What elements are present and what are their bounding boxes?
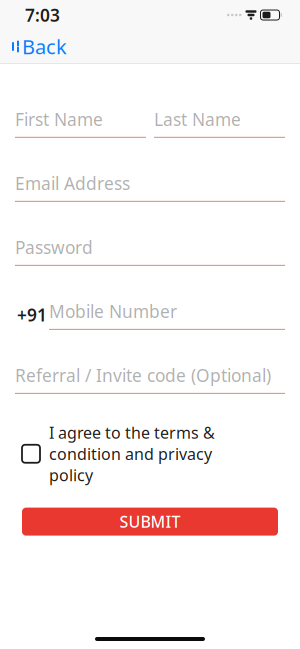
button[interactable]: Back (0, 27, 77, 66)
button[interactable]: I agree to the terms & condition and pri… (15, 422, 285, 486)
staticText: Email Address (15, 172, 130, 195)
staticText: I agree to the terms & condition and pri… (49, 422, 215, 486)
staticText: Back (22, 33, 67, 60)
staticText: Password (15, 236, 93, 259)
staticText: Mobile Number (49, 300, 177, 323)
staticText: Last Name (154, 108, 241, 131)
staticText: 7:03 (25, 3, 60, 26)
staticText: +91 (17, 303, 47, 326)
button[interactable]: SUBMIT (15, 508, 285, 536)
staticText: SUBMIT (119, 511, 180, 532)
staticText: First Name (15, 108, 103, 131)
staticText: Referral / Invite code (Optional) (15, 364, 271, 387)
